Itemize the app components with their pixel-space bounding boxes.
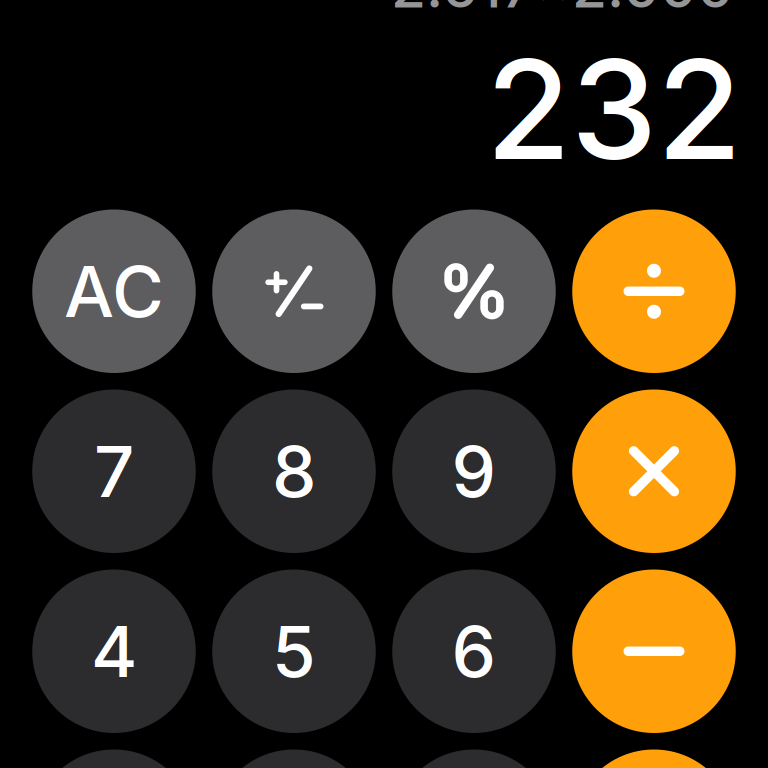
button[interactable]: Divide	[572, 209, 736, 373]
button[interactable]: 8	[212, 389, 376, 553]
button[interactable]: 6	[392, 569, 556, 733]
button[interactable]: Plus minus	[212, 209, 376, 373]
staticText: 7	[94, 428, 134, 514]
staticText: 6	[451, 608, 496, 694]
button[interactable]: Subtract	[572, 569, 736, 733]
button[interactable]: 3	[392, 749, 556, 768]
button[interactable]: 9	[392, 389, 556, 553]
button[interactable]: 7	[32, 389, 196, 553]
button[interactable]: 4	[32, 569, 196, 733]
staticText: 2.617×2.000	[391, 0, 734, 21]
button[interactable]: 2	[212, 749, 376, 768]
staticText: 5	[272, 608, 316, 694]
staticText: 4	[91, 608, 137, 694]
button[interactable]: Add	[572, 749, 736, 768]
button[interactable]: 5	[212, 569, 376, 733]
button[interactable]: 1	[32, 749, 196, 768]
button[interactable]: Percent	[392, 209, 556, 373]
button[interactable]: AC	[32, 209, 196, 373]
staticText: AC	[64, 248, 164, 334]
staticText: 8	[272, 428, 316, 514]
button[interactable]: Multiply	[572, 389, 736, 553]
staticText: 9	[451, 428, 496, 514]
staticText: 232	[486, 26, 742, 192]
